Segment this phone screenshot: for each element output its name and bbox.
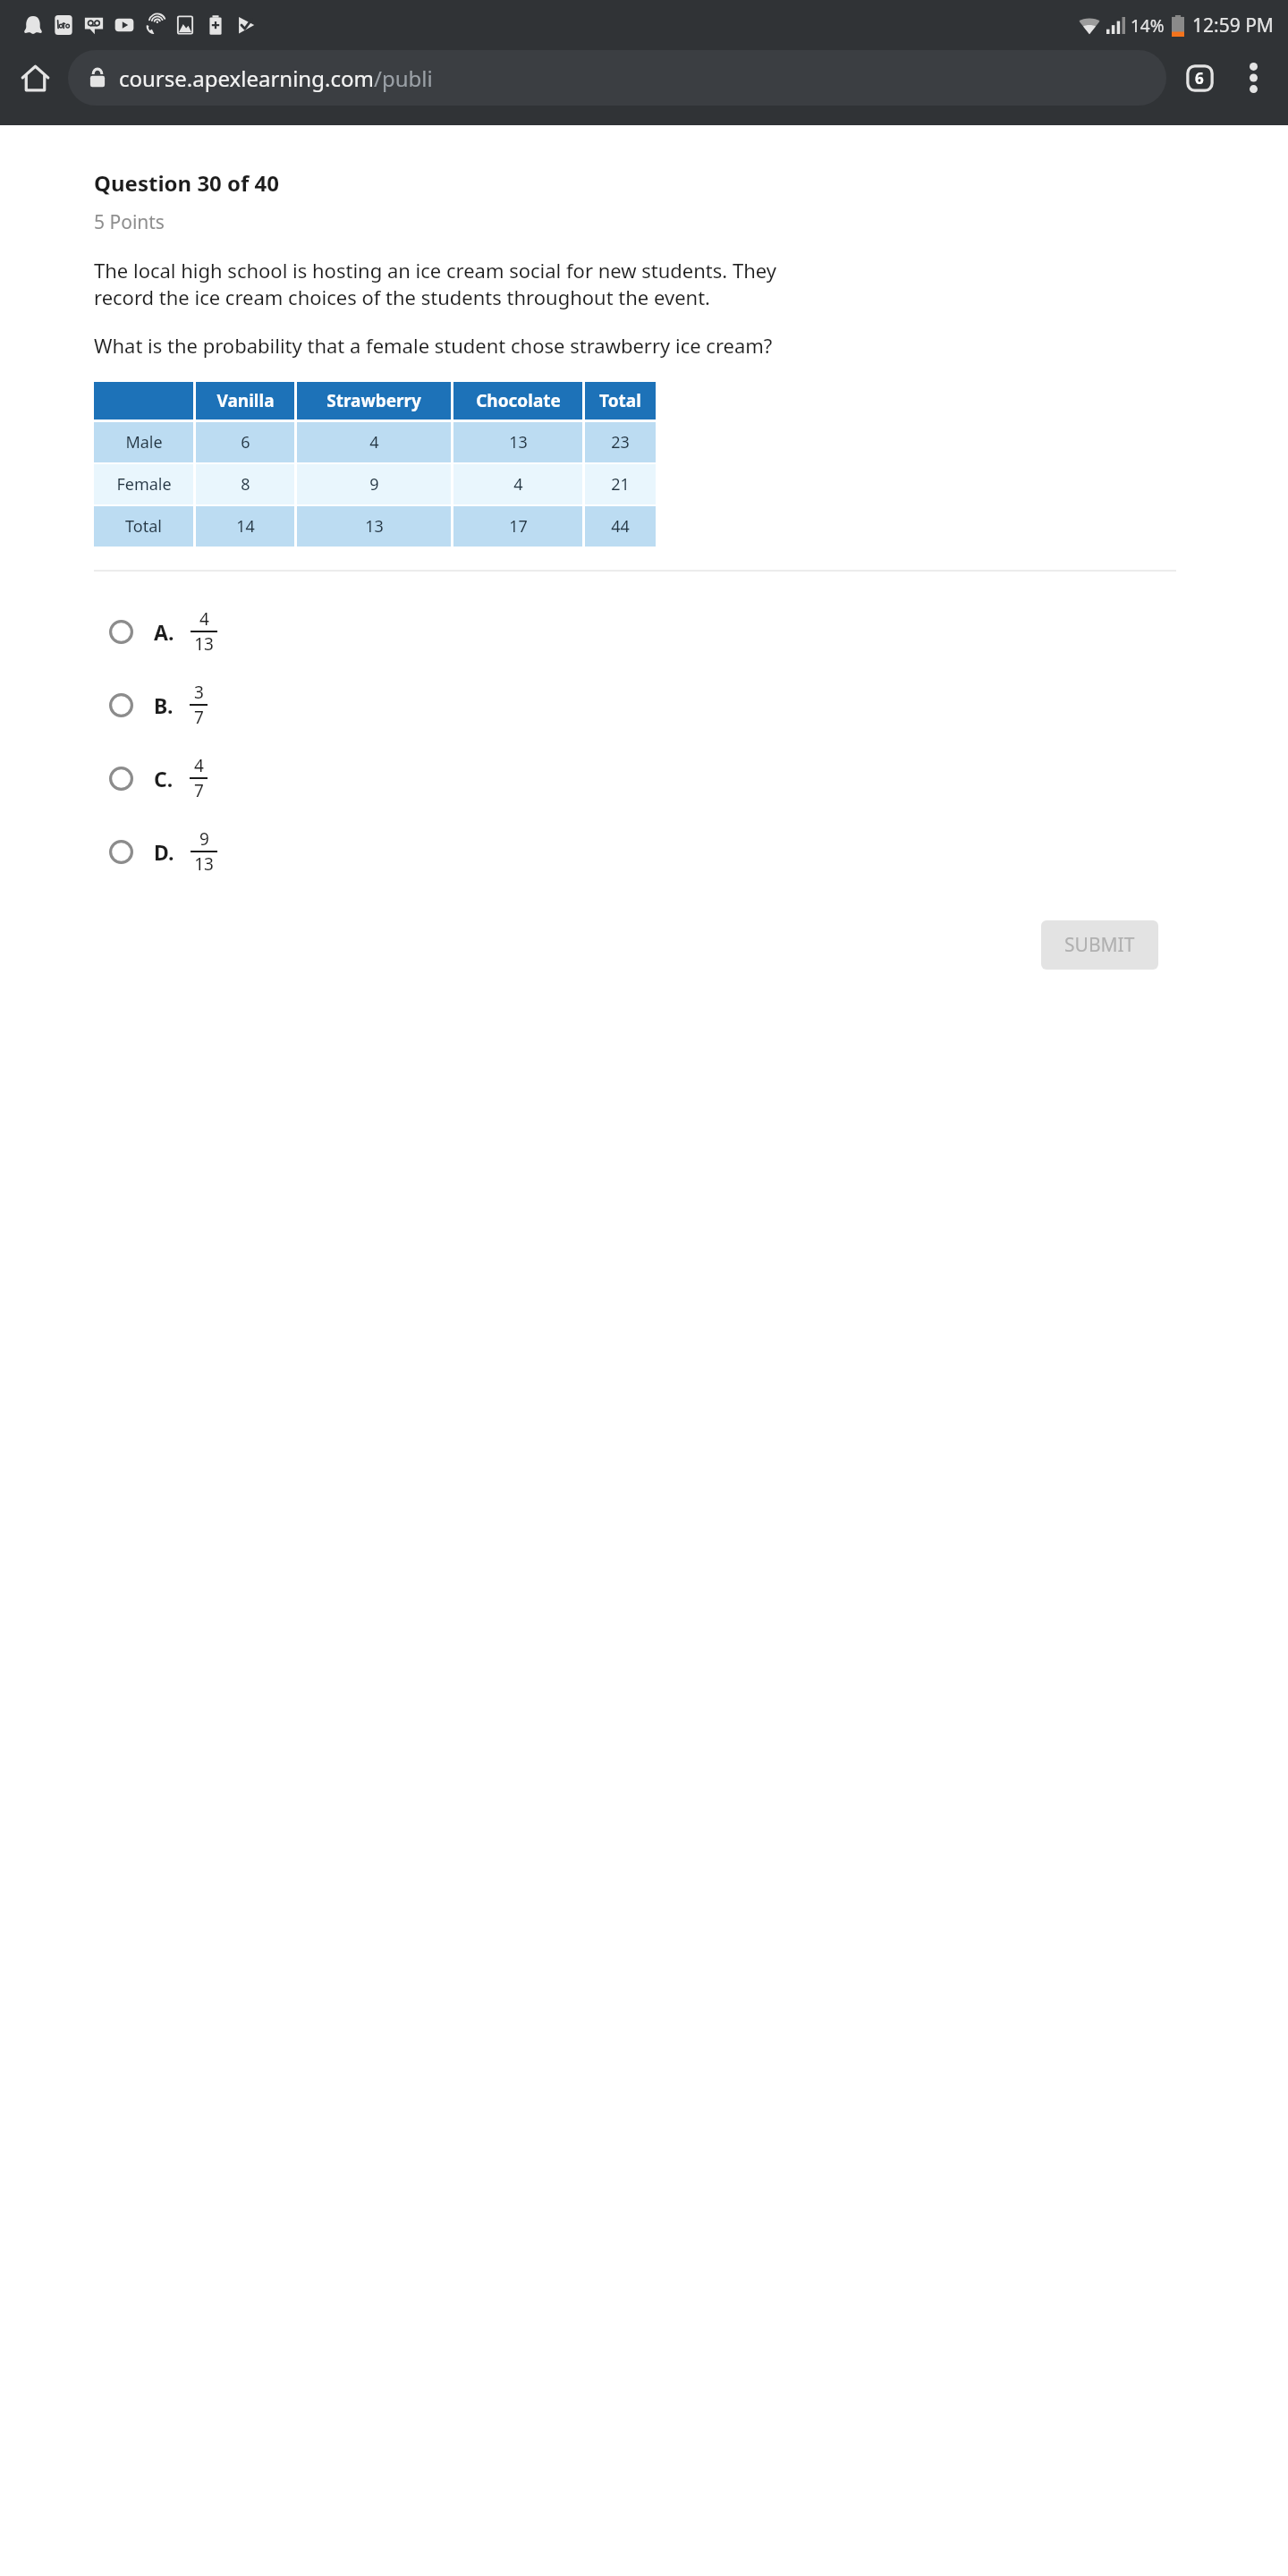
staticText: 9 (199, 827, 209, 851)
staticText: Female (116, 473, 172, 496)
staticText: Question 30 of 40 (94, 168, 280, 198)
button[interactable]: course.apexlearning.com (68, 50, 1166, 106)
staticText: 14 (236, 515, 255, 538)
staticText: 8 (241, 473, 250, 496)
staticText: 12:59 PM (1192, 13, 1274, 38)
staticText: 6 (1195, 68, 1204, 89)
staticText: SUBMIT (1064, 932, 1135, 958)
staticText: 5 Points (94, 209, 165, 235)
staticText: 9 (369, 473, 379, 496)
staticText: The local high school is hosting an ice … (94, 257, 776, 284)
staticText: C. (154, 765, 174, 792)
staticText: B. (154, 691, 174, 719)
staticText: 13 (194, 632, 214, 656)
staticText: 44 (611, 515, 630, 538)
button[interactable]: C. (0, 749, 1288, 808)
staticText: Total (599, 389, 641, 412)
button[interactable]: More options (1227, 52, 1279, 104)
button[interactable]: D. (0, 822, 1288, 881)
button[interactable]: Tabs, 6 open (1174, 52, 1225, 104)
staticText: D. (154, 838, 174, 866)
staticText: 13 (365, 515, 384, 538)
staticText: Chocolate (476, 389, 561, 412)
staticText: 7 (194, 779, 204, 802)
staticText: 23 (611, 431, 630, 453)
staticText: /publi (374, 64, 433, 93)
button[interactable]: Home (7, 50, 63, 106)
staticText: Strawberry (326, 389, 421, 412)
staticText: 7 (194, 706, 204, 729)
staticText: What is the probability that a female st… (94, 332, 773, 359)
staticText: Male (125, 431, 163, 453)
staticText: 13 (194, 852, 214, 876)
staticText: 4 (199, 607, 209, 631)
staticText: course.apexlearning.com (119, 64, 374, 93)
staticText: 17 (509, 515, 528, 538)
staticText: 6 (241, 431, 250, 453)
staticText: record the ice cream choices of the stud… (94, 284, 710, 310)
staticText: 4 (369, 431, 379, 453)
staticText: 4 (194, 754, 204, 777)
staticText: 21 (611, 473, 630, 496)
staticText: 3 (194, 681, 204, 704)
button[interactable]: SUBMIT (1041, 920, 1158, 970)
staticText: Total (125, 515, 162, 538)
staticText: 13 (509, 431, 528, 453)
staticText: Vanilla (216, 389, 275, 412)
staticText: 4 (513, 473, 523, 496)
button[interactable]: A. (0, 602, 1288, 661)
staticText: A. (154, 618, 174, 646)
staticText: 14% (1131, 14, 1165, 38)
button[interactable]: B. (0, 675, 1288, 734)
